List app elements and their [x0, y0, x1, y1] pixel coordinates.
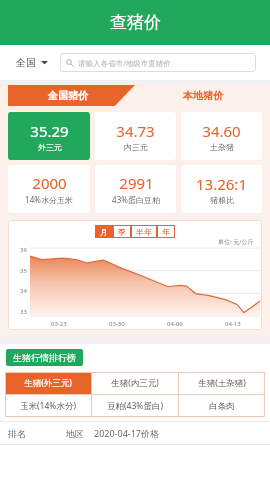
staticText: 13.26:1 — [196, 174, 247, 194]
staticText: 内三元 — [124, 142, 148, 152]
button[interactable]: 生猪(内三元) — [92, 372, 178, 394]
staticText: 本地猪价 — [183, 89, 223, 102]
button[interactable]: 白条肉 — [179, 395, 265, 417]
staticText: 排名 — [8, 428, 26, 439]
button[interactable]: 13.26:1 — [181, 165, 262, 213]
staticText: 查猪价 — [110, 12, 161, 33]
button[interactable]: 生猪行情排行榜 — [6, 349, 83, 366]
button[interactable]: 请输入各省市/地级市查猪价 — [60, 53, 256, 72]
staticText: 全国猪价 — [48, 89, 88, 102]
staticText: 半年 — [136, 227, 152, 237]
staticText: 36 — [20, 246, 27, 254]
staticText: 外三元 — [38, 142, 62, 152]
button[interactable]: 本地猪价 — [135, 85, 270, 106]
button[interactable]: 34.60 — [181, 112, 262, 160]
button[interactable]: 半年 — [131, 225, 157, 238]
staticText: 生猪行情排行榜 — [13, 352, 76, 363]
staticText: 34.60 — [202, 121, 241, 141]
staticText: 月 — [100, 227, 108, 237]
staticText: 豆粕(43%蛋白) — [107, 400, 163, 412]
staticText: 43%蛋白豆粕 — [112, 194, 160, 205]
button[interactable]: 35.29 — [8, 112, 90, 160]
staticText: 04-06 — [167, 320, 183, 328]
button[interactable]: 生猪(土杂猪) — [179, 372, 265, 394]
staticText: 土杂猪 — [210, 142, 234, 152]
staticText: 2000 — [32, 173, 67, 193]
staticText: 34 — [20, 287, 27, 295]
staticText: 35 — [20, 267, 27, 275]
button[interactable]: 2000 — [8, 165, 90, 213]
staticText: 请输入各省市/地级市查猪价 — [78, 58, 171, 68]
button[interactable]: 生猪(外三元) — [5, 372, 91, 394]
staticText: 全国 — [16, 56, 36, 69]
button[interactable]: 全国猪价 — [0, 85, 135, 106]
staticText: 地区 — [66, 428, 84, 439]
staticText: 35.29 — [30, 121, 69, 141]
staticText: 年 — [162, 227, 170, 237]
button[interactable]: 全国 — [14, 50, 50, 75]
staticText: 03-23 — [51, 320, 67, 328]
staticText: 生猪(外三元) — [24, 377, 72, 389]
staticText: 2991 — [119, 173, 154, 193]
staticText: 2020-04-17价格 — [94, 427, 159, 439]
staticText: 33 — [20, 308, 27, 316]
staticText: 14%水分玉米 — [25, 194, 73, 205]
button[interactable]: 34.73 — [95, 112, 176, 160]
button[interactable]: 年 — [157, 225, 175, 238]
staticText: 04-13 — [225, 320, 241, 328]
staticText: 白条肉 — [209, 401, 235, 412]
button[interactable]: 2991 — [95, 165, 176, 213]
staticText: 玉米(14%水分) — [20, 400, 76, 412]
button[interactable]: 玉米(14%水分) — [5, 395, 91, 417]
button[interactable]: 豆粕(43%蛋白) — [92, 395, 178, 417]
staticText: 生猪(土杂猪) — [198, 377, 246, 389]
staticText: 季 — [118, 227, 126, 237]
staticText: 34.73 — [116, 121, 155, 141]
staticText: 猪粮比 — [210, 195, 234, 205]
staticText: 单位: 元/公斤 — [218, 238, 254, 246]
button[interactable]: 月 — [95, 225, 113, 238]
button[interactable]: 季 — [113, 225, 131, 238]
staticText: 03-30 — [109, 320, 125, 328]
staticText: 生猪(内三元) — [111, 377, 159, 389]
